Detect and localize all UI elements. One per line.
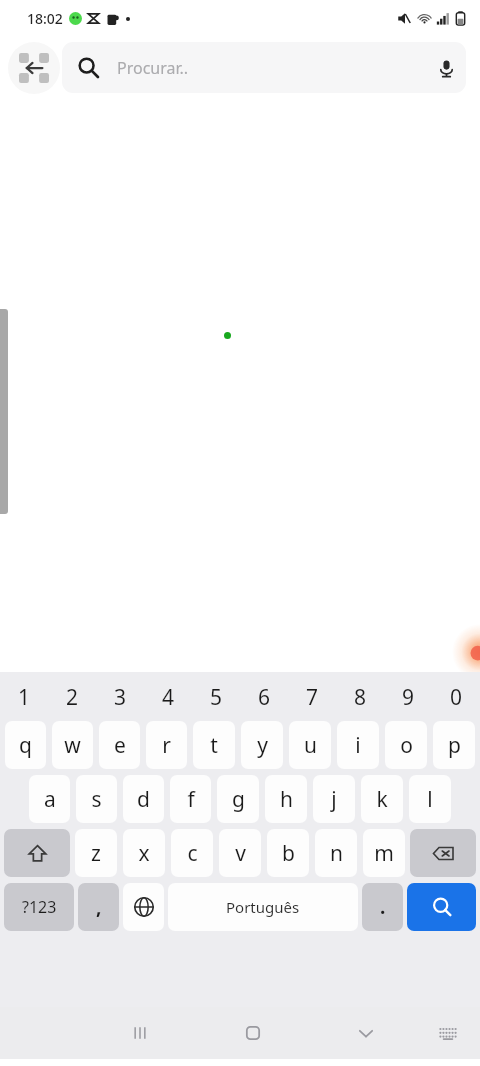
button[interactable]: l <box>409 775 451 823</box>
staticText: 5 <box>210 683 223 712</box>
staticText: 2 <box>66 683 79 712</box>
staticText: w <box>64 731 81 760</box>
staticText: u <box>304 731 317 760</box>
staticText: 1 <box>18 683 31 712</box>
button[interactable]: s <box>76 775 117 823</box>
staticText: i <box>355 731 361 760</box>
button[interactable]: n <box>315 829 357 877</box>
button[interactable]: e <box>99 721 140 769</box>
staticText: t <box>210 731 218 760</box>
staticText: 6 <box>258 683 271 712</box>
button[interactable]: z <box>75 829 117 877</box>
button[interactable]: m <box>363 829 405 877</box>
staticText: a <box>44 785 56 814</box>
button[interactable]: 0 <box>432 676 480 718</box>
staticText: s <box>91 785 102 814</box>
button[interactable]: Home <box>196 1007 309 1059</box>
button[interactable]: ?123 <box>4 883 74 931</box>
button[interactable]: 7 <box>288 676 336 718</box>
button[interactable]: Search <box>407 883 476 931</box>
button[interactable]: w <box>52 721 93 769</box>
button[interactable]: k <box>361 775 403 823</box>
staticText: 7 <box>306 683 319 712</box>
staticText: j <box>331 785 337 814</box>
staticText: 8 <box>354 683 367 712</box>
button[interactable]: Português <box>168 883 358 931</box>
staticText: z <box>91 839 101 868</box>
staticText: e <box>114 731 126 760</box>
button[interactable]: Recent apps <box>83 1007 196 1059</box>
staticText: 18:02 <box>27 9 63 28</box>
button[interactable]: h <box>265 775 307 823</box>
button[interactable]: f <box>170 775 211 823</box>
button[interactable]: 8 <box>336 676 384 718</box>
staticText: 9 <box>402 683 415 712</box>
staticText: h <box>280 785 293 814</box>
staticText: d <box>137 785 150 814</box>
staticText: l <box>427 785 433 814</box>
button[interactable]: 1 <box>0 676 48 718</box>
button[interactable]: i <box>337 721 379 769</box>
button[interactable]: o <box>385 721 427 769</box>
button[interactable]: Hide keyboard <box>309 1007 422 1059</box>
button[interactable]: Change language <box>123 883 164 931</box>
button[interactable]: g <box>217 775 259 823</box>
staticText: n <box>330 839 343 868</box>
button[interactable]: y <box>241 721 283 769</box>
staticText: Português <box>226 897 300 917</box>
button[interactable]: d <box>123 775 164 823</box>
staticText: ?123 <box>22 896 57 918</box>
staticText: f <box>187 785 195 814</box>
button[interactable]: Procurar.. <box>62 42 466 93</box>
button[interactable]: 5 <box>192 676 240 718</box>
staticText: r <box>162 731 171 760</box>
button[interactable]: t <box>193 721 235 769</box>
button[interactable]: 9 <box>384 676 432 718</box>
staticText: m <box>374 839 394 868</box>
button[interactable]: 2 <box>48 676 96 718</box>
staticText: b <box>282 839 295 868</box>
staticText: o <box>400 731 413 760</box>
staticText: . <box>380 894 386 920</box>
staticText: 3 <box>114 683 127 712</box>
button[interactable]: 6 <box>240 676 288 718</box>
staticText: x <box>138 839 150 868</box>
button[interactable]: 4 <box>144 676 192 718</box>
button[interactable]: Backspace <box>410 829 476 877</box>
button[interactable]: Shift <box>4 829 70 877</box>
button[interactable]: j <box>313 775 355 823</box>
button[interactable]: b <box>267 829 309 877</box>
staticText: 4 <box>162 683 175 712</box>
button[interactable]: c <box>171 829 213 877</box>
staticText: 0 <box>450 683 463 712</box>
button[interactable]: Back to app list <box>8 42 60 94</box>
button[interactable]: v <box>219 829 261 877</box>
button[interactable]: q <box>5 721 46 769</box>
staticText: c <box>187 839 198 868</box>
button[interactable]: r <box>146 721 187 769</box>
button[interactable]: p <box>433 721 475 769</box>
button[interactable]: Switch keyboard <box>422 1007 474 1059</box>
staticText: Procurar.. <box>117 57 189 79</box>
staticText: g <box>232 785 245 814</box>
staticText: q <box>19 731 32 760</box>
button[interactable]: Voice search <box>426 48 466 88</box>
staticText: , <box>96 894 102 920</box>
staticText: k <box>376 785 388 814</box>
button[interactable]: x <box>123 829 165 877</box>
staticText: y <box>257 731 268 760</box>
button[interactable]: u <box>289 721 331 769</box>
button[interactable]: a <box>29 775 70 823</box>
button[interactable]: , <box>78 883 119 931</box>
button[interactable]: 3 <box>96 676 144 718</box>
button[interactable]: . <box>362 883 403 931</box>
staticText: p <box>448 731 461 760</box>
staticText: v <box>235 839 246 868</box>
